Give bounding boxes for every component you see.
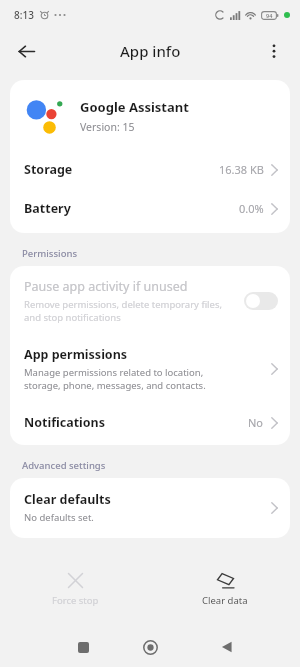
staticText: Clear defaults xyxy=(24,491,111,508)
button[interactable]: Clear data xyxy=(184,568,266,611)
button[interactable]: Back xyxy=(8,33,44,69)
staticText: Clear data xyxy=(202,594,248,607)
staticText: 0.0% xyxy=(239,201,264,216)
button[interactable]: Storage xyxy=(10,150,290,189)
staticText: App info xyxy=(120,41,181,61)
staticText: No xyxy=(248,415,264,430)
button[interactable]: Google Assistant xyxy=(10,80,290,150)
staticText: Advanced settings xyxy=(22,459,106,472)
staticText: 16.38 KB xyxy=(219,162,264,177)
staticText: 94 xyxy=(266,12,273,19)
staticText: Notifications xyxy=(24,414,106,431)
button[interactable]: Back xyxy=(212,632,242,662)
staticText: Version: 15 xyxy=(80,120,135,134)
staticText: Pause app activity if unused xyxy=(24,278,188,295)
staticText: Remove permissions, delete temporary fil… xyxy=(24,298,223,324)
staticText: Battery xyxy=(24,200,71,217)
button[interactable]: App permissions xyxy=(10,332,290,402)
button[interactable]: Battery xyxy=(10,189,290,228)
staticText: Storage xyxy=(24,161,73,178)
staticText: Manage permissions related to location, … xyxy=(24,366,206,392)
staticText: No defaults set. xyxy=(24,511,94,524)
button[interactable]: Pause app activity toggle xyxy=(244,292,278,310)
button[interactable]: Clear defaults xyxy=(10,478,290,538)
button[interactable]: Home xyxy=(135,632,165,662)
button[interactable]: Recent apps xyxy=(68,632,98,662)
staticText: Permissions xyxy=(22,247,78,260)
staticText: Force stop xyxy=(52,594,99,607)
button[interactable]: Force stop xyxy=(34,568,117,611)
staticText: App permissions xyxy=(24,346,128,363)
staticText: Google Assistant xyxy=(80,98,189,116)
button[interactable]: Notifications xyxy=(10,402,290,445)
button[interactable]: More options xyxy=(256,33,292,69)
button[interactable]: Pause app activity if unused xyxy=(10,266,290,332)
staticText: 8:13 xyxy=(14,8,34,22)
